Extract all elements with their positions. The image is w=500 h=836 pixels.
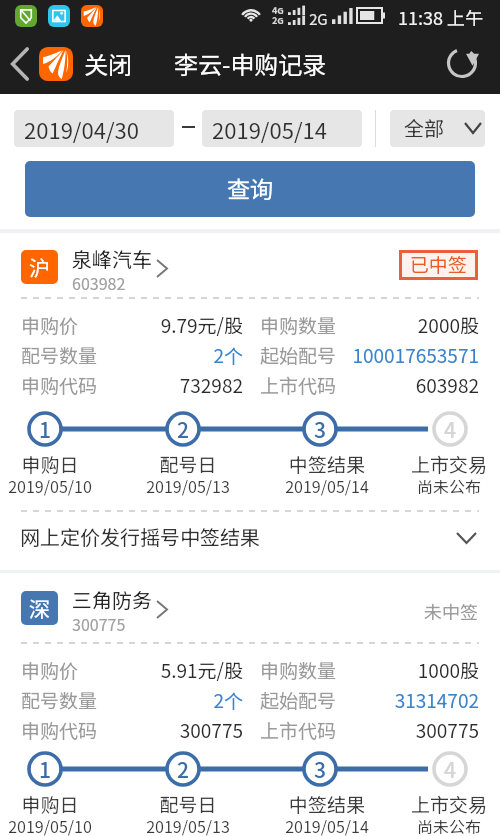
staticText: 上市交易 [389, 450, 500, 478]
staticText: 深 [29, 593, 50, 623]
staticText: 732982 [0, 371, 243, 399]
staticText: 603982 [72, 271, 126, 294]
staticText: 中签结果 [267, 450, 387, 478]
staticText: 配号数量 [21, 341, 98, 369]
staticText: 网上定价发行摇号中签结果 [20, 522, 260, 551]
staticText: 配号日 [128, 450, 248, 478]
staticText: 31314702 [0, 686, 479, 714]
staticText: 4 [444, 754, 456, 784]
staticText: 5.91元/股 [0, 656, 243, 684]
staticText: 申购数量 [260, 311, 337, 339]
staticText: 申购数量 [260, 656, 337, 684]
staticText: 沪 [29, 252, 50, 282]
staticText: 尚未公布 [389, 474, 500, 497]
staticText: 11:38 上午 [398, 4, 483, 30]
button[interactable]: Refresh [448, 46, 484, 80]
staticText: 申购价 [21, 656, 79, 684]
staticText: 2G [272, 14, 284, 27]
staticText: 2019/05/10 [0, 474, 110, 497]
staticText: 2 [177, 414, 189, 444]
staticText: 上市代码 [260, 371, 337, 399]
staticText: 已中签 [410, 250, 468, 278]
staticText: 300775 [0, 716, 479, 744]
staticText: 起始配号 [260, 686, 337, 714]
staticText: 申购日 [0, 790, 110, 818]
staticText: 2个 [0, 686, 243, 714]
staticText: 查询 [227, 171, 273, 204]
button[interactable]: 查询 [25, 161, 475, 217]
button[interactable]: 2019/05/14 [202, 110, 362, 147]
button[interactable]: 深 [0, 574, 500, 638]
staticText: 603982 [0, 371, 479, 399]
staticText: 2 [177, 754, 189, 784]
staticText: 上市代码 [260, 716, 337, 744]
staticText: 配号数量 [21, 686, 98, 714]
button[interactable]: 沪 [0, 233, 500, 297]
staticText: 配号日 [128, 790, 248, 818]
staticText: 2019/05/14 [212, 113, 327, 145]
staticText: 尚未公布 [389, 814, 500, 836]
staticText: 未中签 [0, 598, 478, 624]
button[interactable]: Back [10, 46, 132, 81]
staticText: 3 [314, 754, 326, 784]
staticText: 300775 [72, 612, 126, 635]
staticText: 上市交易 [389, 790, 500, 818]
staticText: 关闭 [84, 46, 132, 81]
staticText: 300775 [0, 716, 243, 744]
staticText: 三角防务 [72, 585, 152, 614]
staticText: 1000股 [0, 656, 479, 684]
staticText: 1 [39, 754, 51, 784]
staticText: 2019/05/10 [0, 814, 110, 836]
staticText: 2019/05/13 [128, 474, 248, 497]
button[interactable]: 网上定价发行摇号中签结果 [0, 512, 500, 570]
staticText: 申购代码 [21, 716, 98, 744]
staticText: 2019/05/14 [267, 474, 387, 497]
staticText: 泉峰汽车 [72, 244, 152, 273]
staticText: 3 [314, 414, 326, 444]
staticText: 全部 [404, 113, 444, 142]
staticText: 申购价 [21, 311, 79, 339]
staticText: 1 [39, 414, 51, 444]
button[interactable]: 2019/04/30 [14, 110, 174, 147]
staticText: 起始配号 [260, 341, 337, 369]
staticText: 2G [309, 8, 328, 30]
staticText: 中签结果 [267, 790, 387, 818]
staticText: 4G [272, 4, 284, 17]
staticText: 4 [444, 414, 456, 444]
staticText: 9.79元/股 [0, 311, 243, 339]
staticText: 2019/05/14 [267, 814, 387, 836]
staticText: 2019/05/13 [128, 814, 248, 836]
staticText: 2个 [0, 341, 243, 369]
staticText: 李云-申购记录 [174, 46, 327, 81]
other: Back [10, 49, 30, 79]
staticText: 2000股 [0, 311, 479, 339]
button[interactable]: 全部 [390, 110, 485, 147]
staticText: 申购代码 [21, 371, 98, 399]
staticText: 2019/04/30 [24, 113, 139, 145]
staticText: 100017653571 [0, 341, 479, 369]
staticText: 申购日 [0, 450, 110, 478]
